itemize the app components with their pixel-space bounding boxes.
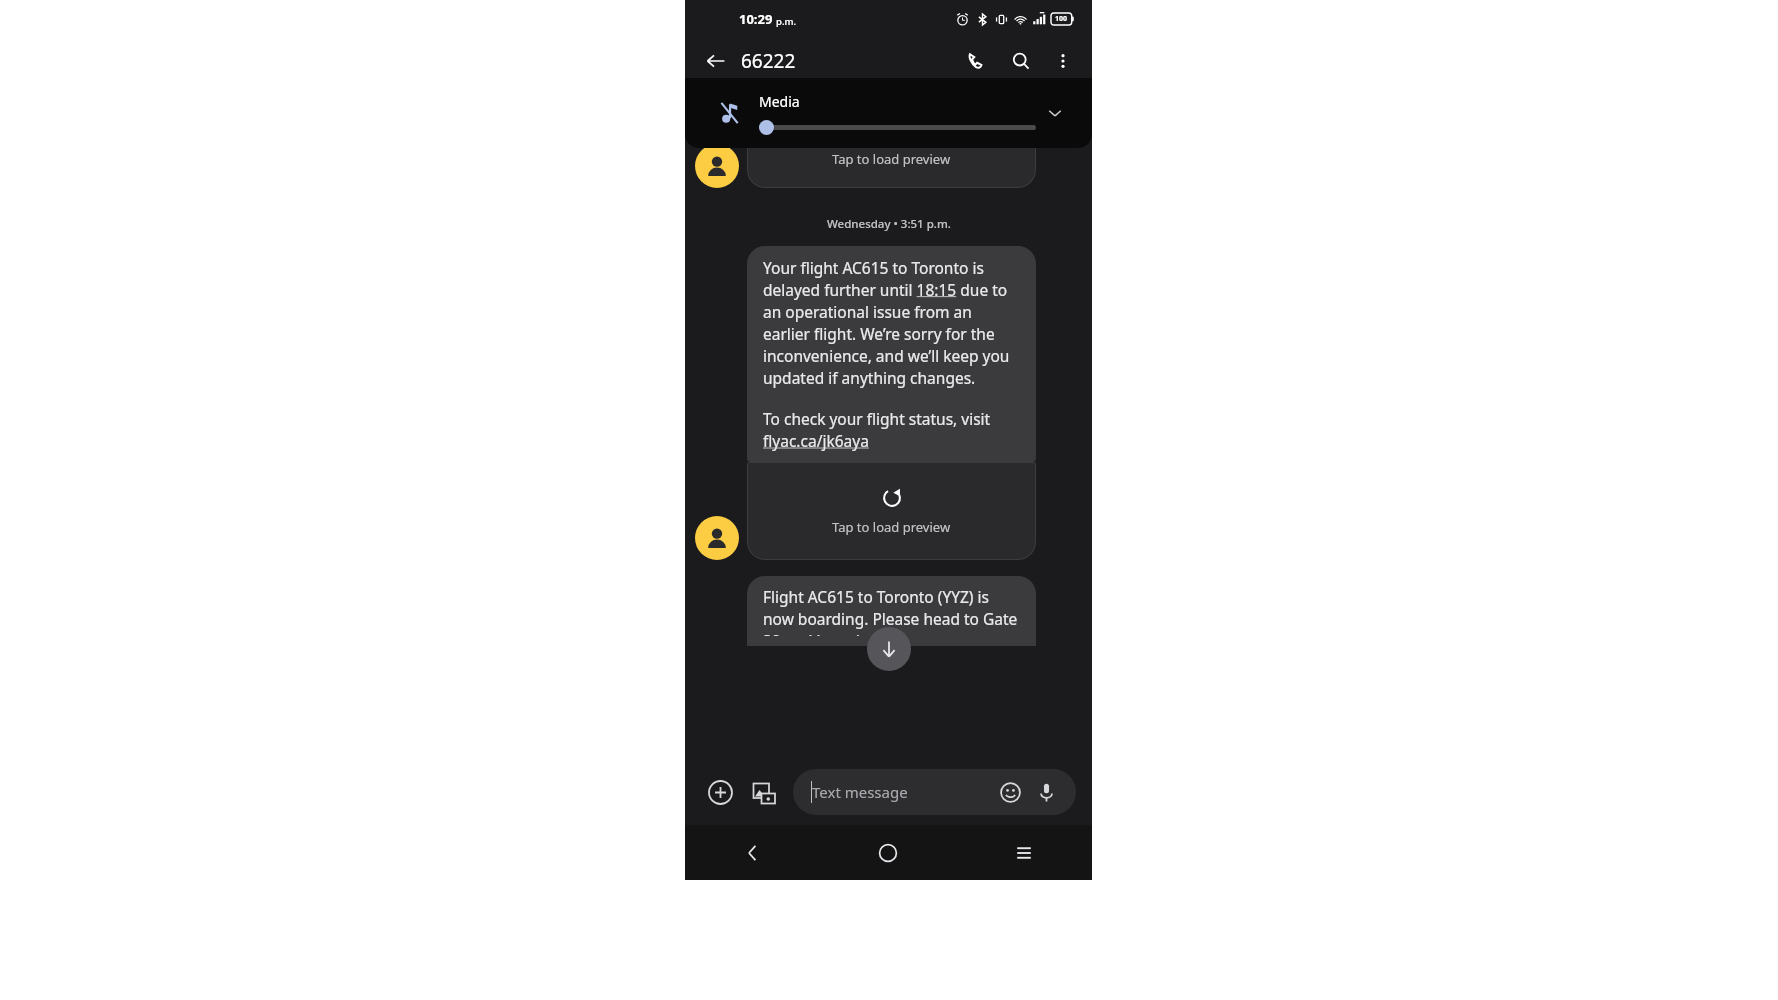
button[interactable] — [695, 516, 739, 560]
button[interactable]: Text message — [793, 769, 1076, 815]
staticText: Text message — [812, 782, 994, 802]
button[interactable]: Send photo — [745, 773, 783, 811]
button[interactable]: Search — [1004, 44, 1038, 78]
button[interactable]: Tap to load preview — [747, 462, 1036, 560]
button[interactable]: Media muted — [685, 78, 1092, 148]
button[interactable]: Call — [958, 44, 992, 78]
button[interactable]: Flight AC615 to Toronto (YYZ) is now boa… — [747, 576, 1036, 646]
button[interactable]: Tap to load preview — [747, 84, 1036, 188]
staticText: 66222 — [741, 48, 796, 74]
button[interactable]: Add attachment — [701, 773, 739, 811]
button[interactable]: Voice message — [1030, 776, 1062, 808]
staticText: p.m. — [776, 15, 797, 28]
button[interactable]: Expand volume controls — [1040, 98, 1070, 128]
button[interactable]: More options — [1048, 46, 1078, 76]
staticText: Tap to load preview — [832, 518, 951, 536]
button[interactable]: Scroll to bottom — [867, 627, 911, 671]
button[interactable]: Home — [820, 825, 956, 880]
staticText: Tap to load preview — [832, 150, 951, 168]
staticText: To check your flight status, visit flyac… — [763, 408, 1020, 451]
button[interactable]: Recent apps — [956, 825, 1092, 880]
button[interactable]: Your flight AC615 to Toronto is delayed … — [747, 246, 1036, 462]
staticText: 100 — [1055, 14, 1068, 24]
other: Media muted — [719, 101, 743, 125]
staticText: Flight AC615 to Toronto (YYZ) is now boa… — [763, 586, 1020, 636]
staticText: Media — [759, 92, 800, 111]
button[interactable]: Emoji — [994, 776, 1026, 808]
button[interactable]: Back — [699, 44, 733, 78]
button[interactable]: Back — [685, 825, 820, 880]
button[interactable] — [695, 144, 739, 188]
staticText: 10:29 — [739, 10, 773, 28]
staticText: Your flight AC615 to Toronto is delayed … — [763, 257, 1020, 388]
staticText: Wednesday • 3:51 p.m. — [827, 216, 951, 232]
